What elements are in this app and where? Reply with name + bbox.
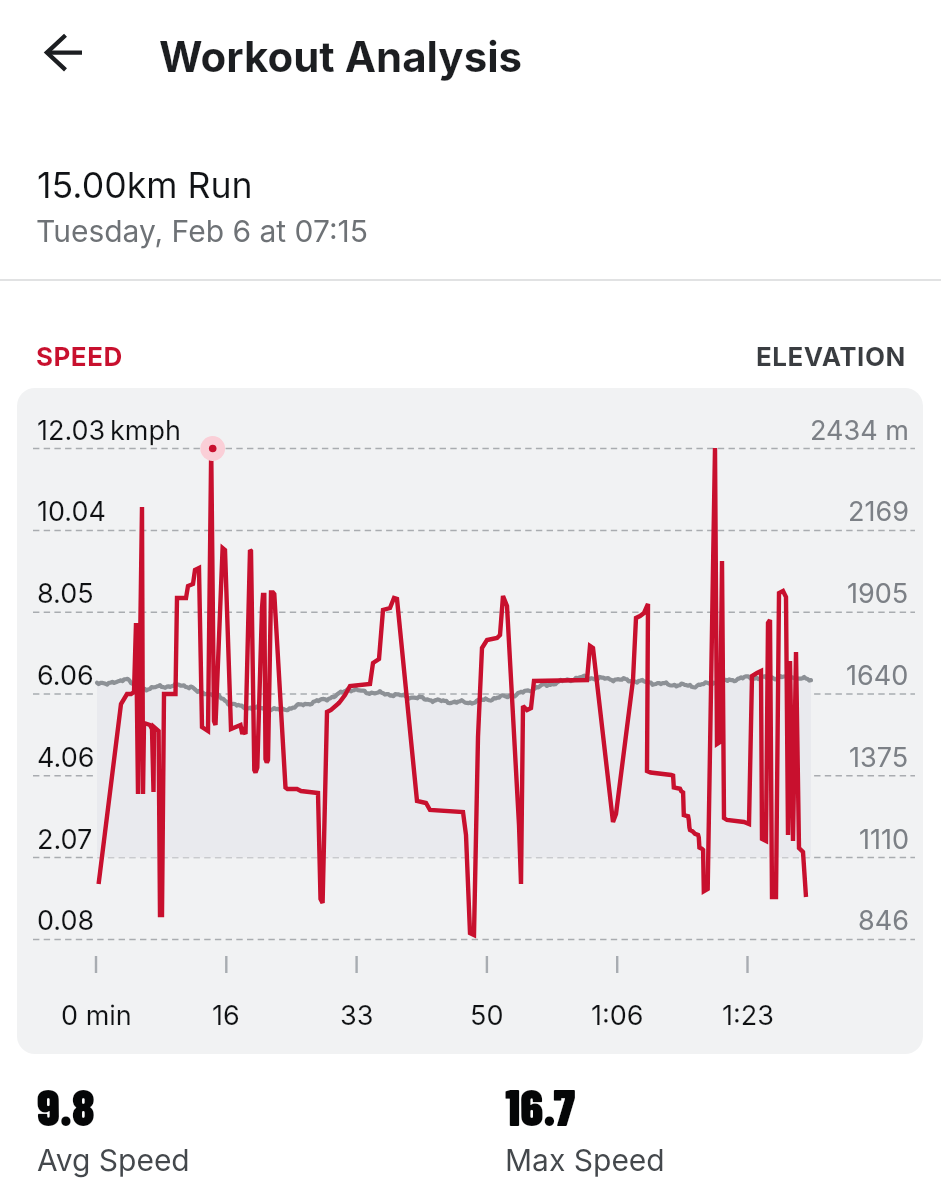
staticText: 2.07 [37, 823, 93, 856]
staticText: 6.06 [37, 659, 94, 692]
staticText: Max Speed [505, 1142, 665, 1178]
staticText: 1640 [846, 659, 909, 692]
button[interactable]: 16.7 [505, 1076, 805, 1178]
staticText: 2169 [848, 495, 909, 528]
staticText: 1110 [859, 823, 909, 856]
staticText: kmph [110, 414, 181, 447]
staticText: 15.00km Run [37, 163, 253, 206]
staticText: 1:06 [591, 999, 644, 1032]
staticText: 16.7 [505, 1076, 576, 1136]
staticText: 1905 [847, 577, 909, 610]
staticText: Tuesday, Feb 6 at 07:15 [36, 213, 368, 249]
staticText: Avg Speed [37, 1142, 190, 1178]
staticText: 846 [858, 904, 909, 937]
staticText: SPEED [36, 341, 123, 372]
staticText: 12.03 [37, 414, 106, 447]
staticText: 2434 m [810, 414, 909, 447]
staticText: 0 min [61, 999, 132, 1032]
button[interactable]: 9.8 [37, 1076, 337, 1178]
staticText: 10.04 [37, 495, 106, 528]
staticText: 33 [340, 999, 374, 1032]
staticText: 9.8 [37, 1076, 95, 1136]
staticText: Workout Analysis [159, 31, 523, 82]
staticText: 0.08 [37, 904, 95, 937]
staticText: 16 [212, 999, 240, 1032]
staticText: 8.05 [37, 577, 94, 610]
staticText: 4.06 [37, 741, 95, 774]
button[interactable]: Back [26, 16, 98, 88]
staticText: 1:23 [722, 999, 774, 1032]
staticText: 50 [470, 999, 504, 1032]
staticText: ELEVATION [756, 341, 906, 372]
staticText: 1375 [849, 741, 909, 774]
